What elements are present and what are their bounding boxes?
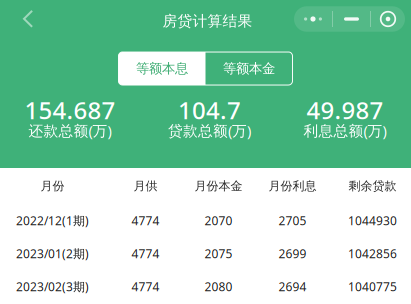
button[interactable]: 等额本金 xyxy=(205,52,292,85)
button[interactable]: 等额本息 xyxy=(118,52,205,85)
staticText: 2070 xyxy=(204,212,232,228)
staticText: 月供 xyxy=(133,179,157,193)
button[interactable]: More options, minimise and close xyxy=(294,6,405,32)
staticText: 剩余贷款 xyxy=(348,179,396,193)
staticText: 月份 xyxy=(40,179,64,193)
staticText: 154.687 xyxy=(24,94,115,126)
staticText: 4774 xyxy=(131,245,159,261)
staticText: 2705 xyxy=(278,212,306,228)
staticText: 4774 xyxy=(131,212,159,228)
staticText: 104.7 xyxy=(178,94,241,126)
staticText: 2694 xyxy=(278,278,306,294)
staticText: 4774 xyxy=(131,278,159,294)
staticText: 房贷计算结果 xyxy=(162,12,252,30)
staticText: 等额本息 xyxy=(136,60,188,77)
staticText: 月份本金 xyxy=(194,179,242,193)
staticText: 1040775 xyxy=(348,278,397,294)
staticText: 等额本金 xyxy=(223,60,275,77)
staticText: 贷款总额(万) xyxy=(168,121,251,140)
staticText: 1044930 xyxy=(348,212,397,228)
staticText: 2023/02(3期) xyxy=(16,278,89,294)
staticText: 月份利息 xyxy=(268,179,316,193)
staticText: 1042856 xyxy=(348,245,397,261)
staticText: 2699 xyxy=(278,245,306,261)
staticText: 2080 xyxy=(204,278,232,294)
button[interactable]: Back xyxy=(0,0,56,38)
staticText: 2023/01(2期) xyxy=(16,245,89,261)
staticText: 2075 xyxy=(204,245,232,261)
staticText: 49.987 xyxy=(306,94,383,126)
staticText: 2022/12(1期) xyxy=(16,212,89,228)
staticText: 还款总额(万) xyxy=(28,121,111,140)
staticText: 利息总额(万) xyxy=(303,121,386,140)
